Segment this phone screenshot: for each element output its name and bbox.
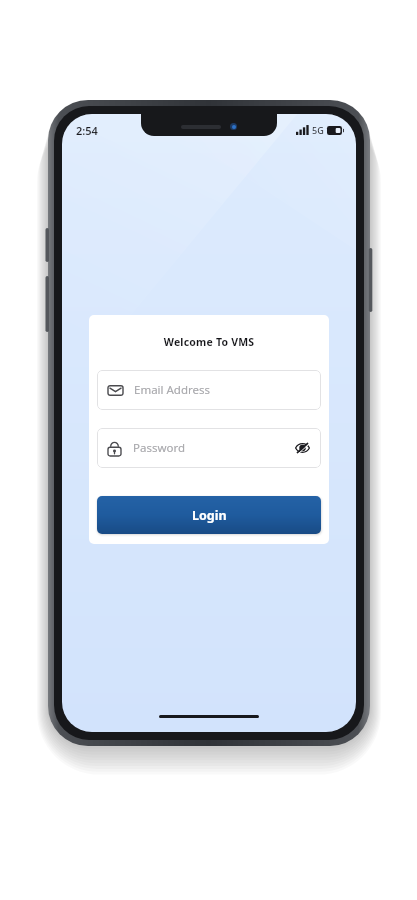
staticText: 5G — [312, 124, 324, 136]
staticText: 2:54 — [76, 123, 98, 138]
staticText: Welcome To VMS — [97, 335, 321, 349]
button[interactable]: Password — [97, 428, 321, 468]
button[interactable]: Email Address — [97, 370, 321, 410]
button[interactable]: Show password — [292, 438, 312, 458]
staticText: Password — [133, 440, 292, 456]
staticText: Login — [192, 507, 227, 524]
staticText: Email Address — [134, 382, 211, 398]
button[interactable]: Login — [97, 496, 321, 534]
